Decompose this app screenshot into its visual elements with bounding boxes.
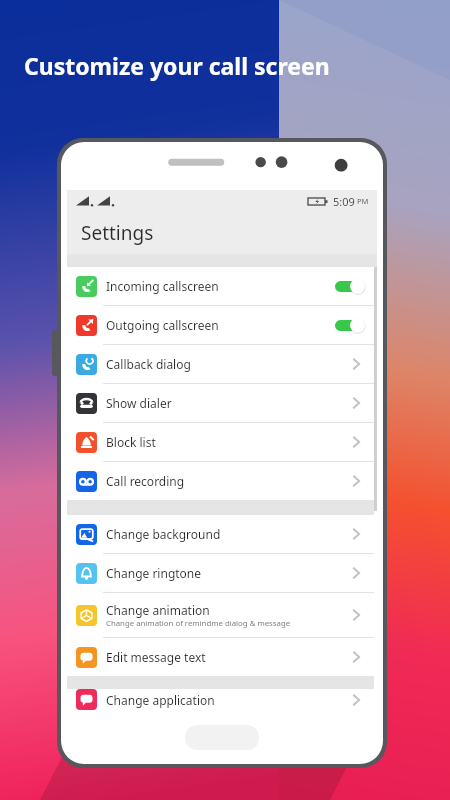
button[interactable]: Change application <box>67 689 374 710</box>
button[interactable]: Block list <box>67 423 374 461</box>
staticText: Change animation <box>106 602 210 618</box>
button[interactable]: Callback dialog <box>67 345 374 383</box>
staticText: Outgoing callscreen <box>106 317 219 333</box>
staticText: PM <box>357 196 369 206</box>
staticText: Call recording <box>106 473 185 489</box>
staticText: Block list <box>106 434 156 450</box>
staticText: Settings <box>81 220 154 246</box>
button[interactable]: Edit message text <box>67 638 374 676</box>
staticText: 5:09 <box>333 194 355 209</box>
staticText: Edit message text <box>106 649 206 665</box>
button[interactable]: Incoming callscreen <box>67 267 374 305</box>
staticText: Show dialer <box>106 395 172 411</box>
staticText: Change background <box>106 526 221 542</box>
staticText: Customize your call screen <box>24 50 330 81</box>
staticText: Change animation of remindme dialog & me… <box>106 618 291 629</box>
button[interactable]: Call recording <box>67 462 374 500</box>
staticText: Change application <box>106 692 215 708</box>
button[interactable]: Change background <box>67 515 374 553</box>
staticText: Incoming callscreen <box>106 278 219 294</box>
staticText: Change ringtone <box>106 565 202 581</box>
button[interactable]: Change animation <box>67 593 374 637</box>
button[interactable]: Home <box>185 725 259 750</box>
button[interactable]: Show dialer <box>67 384 374 422</box>
button[interactable]: Outgoing callscreen <box>67 306 374 344</box>
button[interactable]: Change ringtone <box>67 554 374 592</box>
staticText: Callback dialog <box>106 356 191 372</box>
